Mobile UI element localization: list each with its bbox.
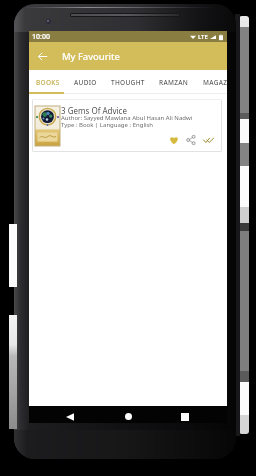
button[interactable]: Share	[186, 135, 196, 145]
staticText: LTE	[198, 33, 208, 41]
staticText: AUDIO	[74, 78, 97, 87]
button[interactable]: RAMZAN	[152, 70, 196, 94]
button[interactable]: AUDIO	[67, 70, 104, 94]
staticText: 3 Gems Of Advice	[61, 105, 127, 116]
staticText: 10:00	[32, 32, 50, 42]
button[interactable]: BOOKS	[29, 70, 67, 94]
staticText: MAGAZINE	[203, 78, 227, 87]
staticText: My Favourite	[62, 50, 120, 63]
staticText: Author: Sayyed Mawlana Abul Hasan Ali Na…	[61, 114, 193, 122]
button[interactable]: Back	[61, 408, 79, 425]
button[interactable]: Back	[33, 47, 51, 65]
button[interactable]: Recent apps	[176, 408, 194, 425]
staticText: RAMZAN	[159, 78, 189, 87]
button[interactable]: Downloaded	[203, 135, 214, 146]
button[interactable]: 3 Gems Of Advice	[32, 99, 222, 152]
button[interactable]: THOUGHT	[104, 70, 152, 94]
button[interactable]: Favourite	[169, 135, 179, 145]
button[interactable]: Home	[119, 408, 137, 425]
button[interactable]: MAGAZINE	[196, 70, 227, 94]
staticText: BOOKS	[36, 78, 60, 87]
staticText: Type : Book | Language : English	[61, 121, 154, 129]
staticText: THOUGHT	[111, 78, 145, 87]
